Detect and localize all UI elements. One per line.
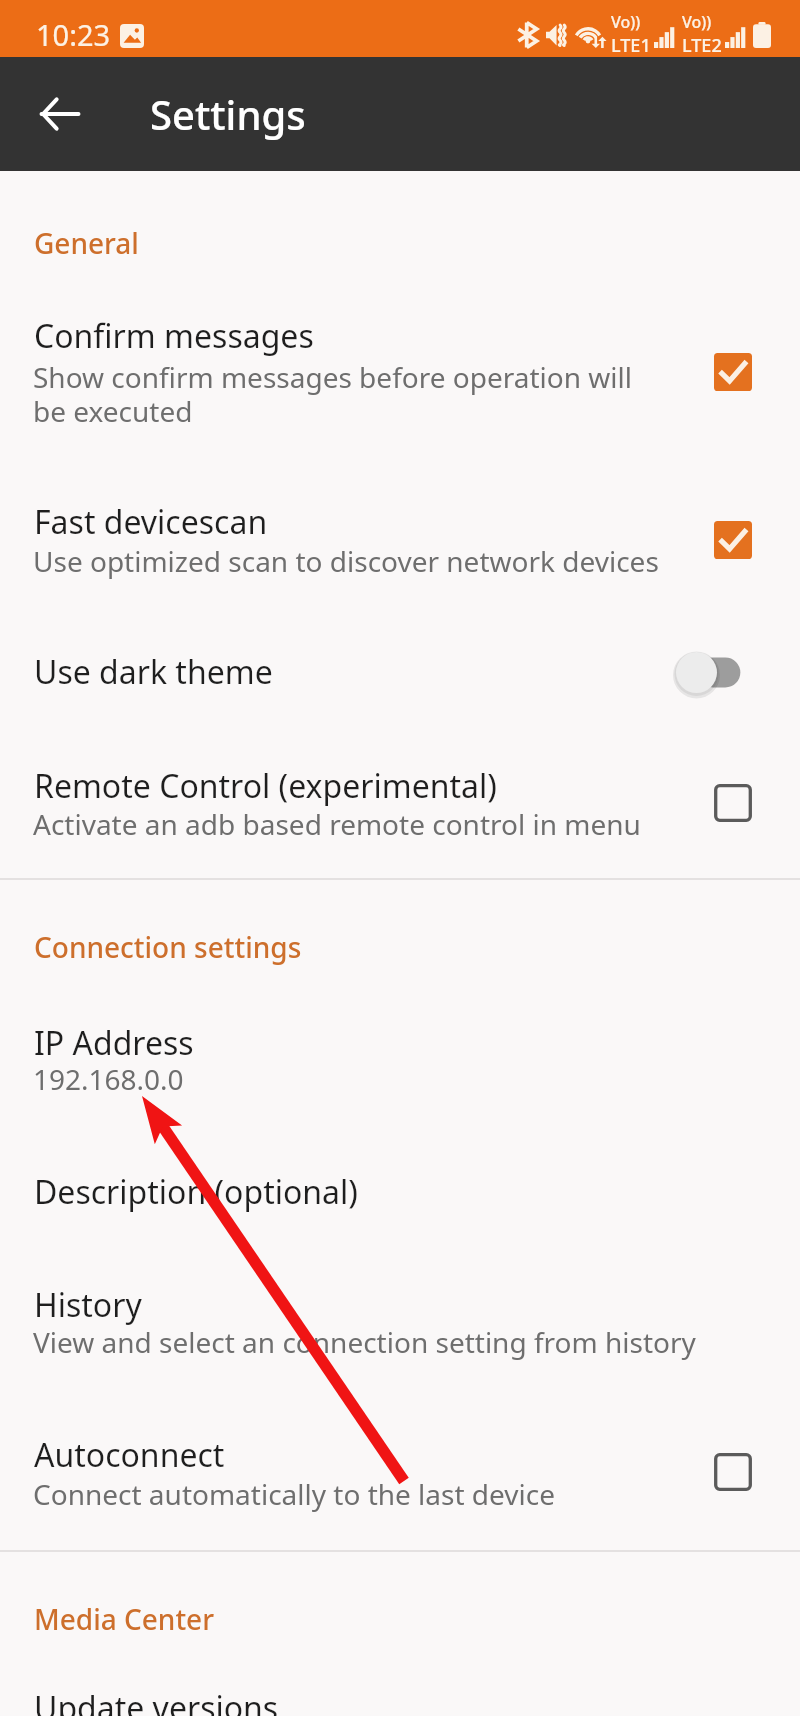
staticText: Update versions — [34, 1686, 279, 1716]
staticText: Settings — [150, 87, 306, 141]
button[interactable]: Description (optional) — [0, 1144, 800, 1240]
staticText: Connection settings — [34, 928, 302, 966]
staticText: Connect automatically to the last device — [33, 1475, 555, 1513]
staticText: 192.168.0.0 — [33, 1060, 184, 1098]
staticText: Media Center — [34, 1600, 215, 1638]
staticText: View and select an connection setting fr… — [33, 1323, 696, 1361]
button[interactable]: Use dark theme — [0, 622, 800, 718]
button[interactable]: Confirm messages — [0, 288, 800, 452]
button[interactable]: History — [0, 1258, 800, 1384]
button[interactable]: Back — [28, 57, 92, 171]
button[interactable]: Checkbox checked — [703, 510, 763, 570]
button[interactable]: General — [0, 222, 800, 270]
staticText: Description (optional) — [34, 1170, 358, 1214]
staticText: IP Address — [34, 1021, 194, 1065]
staticText: LTE2 — [682, 33, 722, 58]
button[interactable]: Fast devicescan — [0, 472, 800, 602]
staticText: Vo)) — [611, 11, 641, 33]
staticText: 10:23 — [36, 15, 111, 54]
staticText: History — [34, 1283, 142, 1327]
staticText: Autoconnect — [34, 1433, 225, 1477]
button[interactable]: Remote Control (experimental) — [0, 738, 800, 864]
staticText: Use dark theme — [34, 650, 273, 694]
button[interactable]: Media Center — [0, 1598, 800, 1646]
staticText: Confirm messages — [34, 314, 314, 358]
staticText: LTE1 — [611, 33, 651, 58]
button[interactable]: Autoconnect — [0, 1406, 800, 1536]
staticText: Remote Control (experimental) — [34, 764, 497, 808]
button[interactable]: Checkbox unchecked — [703, 1442, 763, 1502]
staticText: Fast devicescan — [34, 500, 268, 544]
staticText: General — [34, 224, 139, 262]
button[interactable]: IP Address — [0, 994, 800, 1106]
button[interactable]: Toggle off — [664, 641, 752, 703]
button[interactable]: Checkbox checked — [703, 342, 763, 402]
staticText: Show confirm messages before operation w… — [33, 358, 632, 430]
button[interactable]: Connection settings — [0, 926, 800, 974]
staticText: Vo)) — [682, 11, 712, 33]
staticText: Use optimized scan to discover network d… — [33, 542, 659, 580]
button[interactable]: Checkbox unchecked — [703, 773, 763, 833]
staticText: Activate an adb based remote control in … — [33, 805, 641, 843]
button[interactable]: Update versions — [0, 1660, 800, 1716]
